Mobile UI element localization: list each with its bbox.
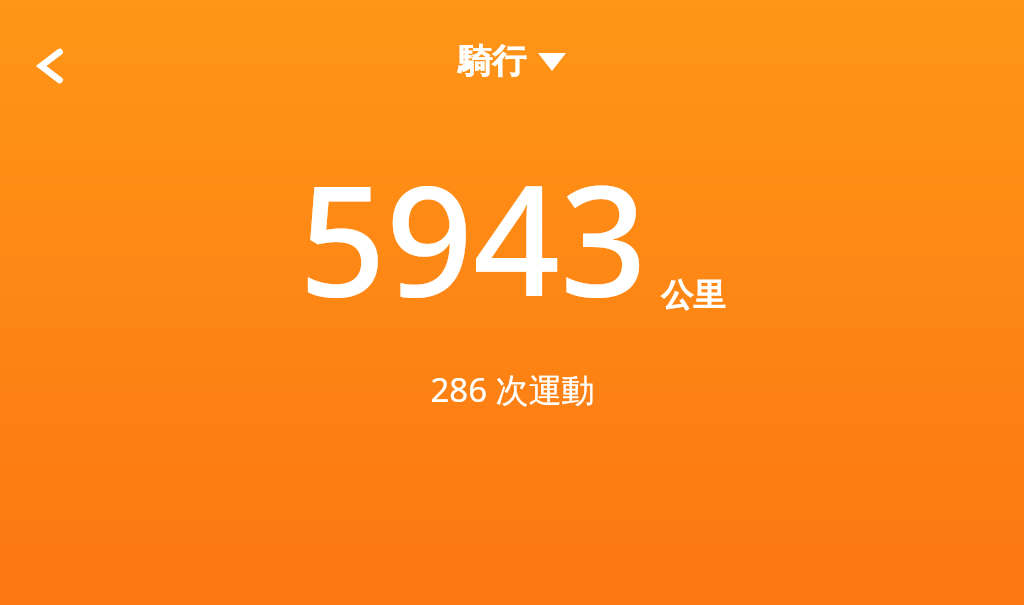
staticText: 286 次運動 <box>430 367 595 412</box>
staticText: 公里 <box>661 275 725 315</box>
button[interactable]: Back <box>18 34 82 98</box>
staticText: 騎行 <box>458 40 526 83</box>
staticText: 5943 <box>299 134 647 341</box>
button[interactable]: 騎行 <box>458 40 566 83</box>
